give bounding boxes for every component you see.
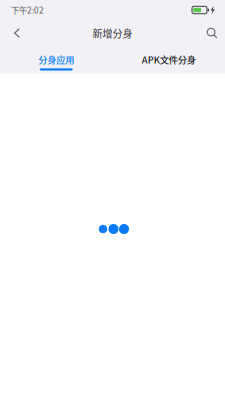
staticText: 新增分身 <box>92 26 132 40</box>
staticText: 下午2:02 <box>11 4 44 16</box>
staticText: APK文件分身 <box>142 53 196 66</box>
button[interactable]: Search <box>200 20 224 46</box>
button[interactable]: APK文件分身 <box>112 46 225 72</box>
button[interactable]: 分身应用 <box>0 46 112 72</box>
staticText: 分身应用 <box>38 53 74 66</box>
button[interactable]: Back <box>5 20 29 46</box>
